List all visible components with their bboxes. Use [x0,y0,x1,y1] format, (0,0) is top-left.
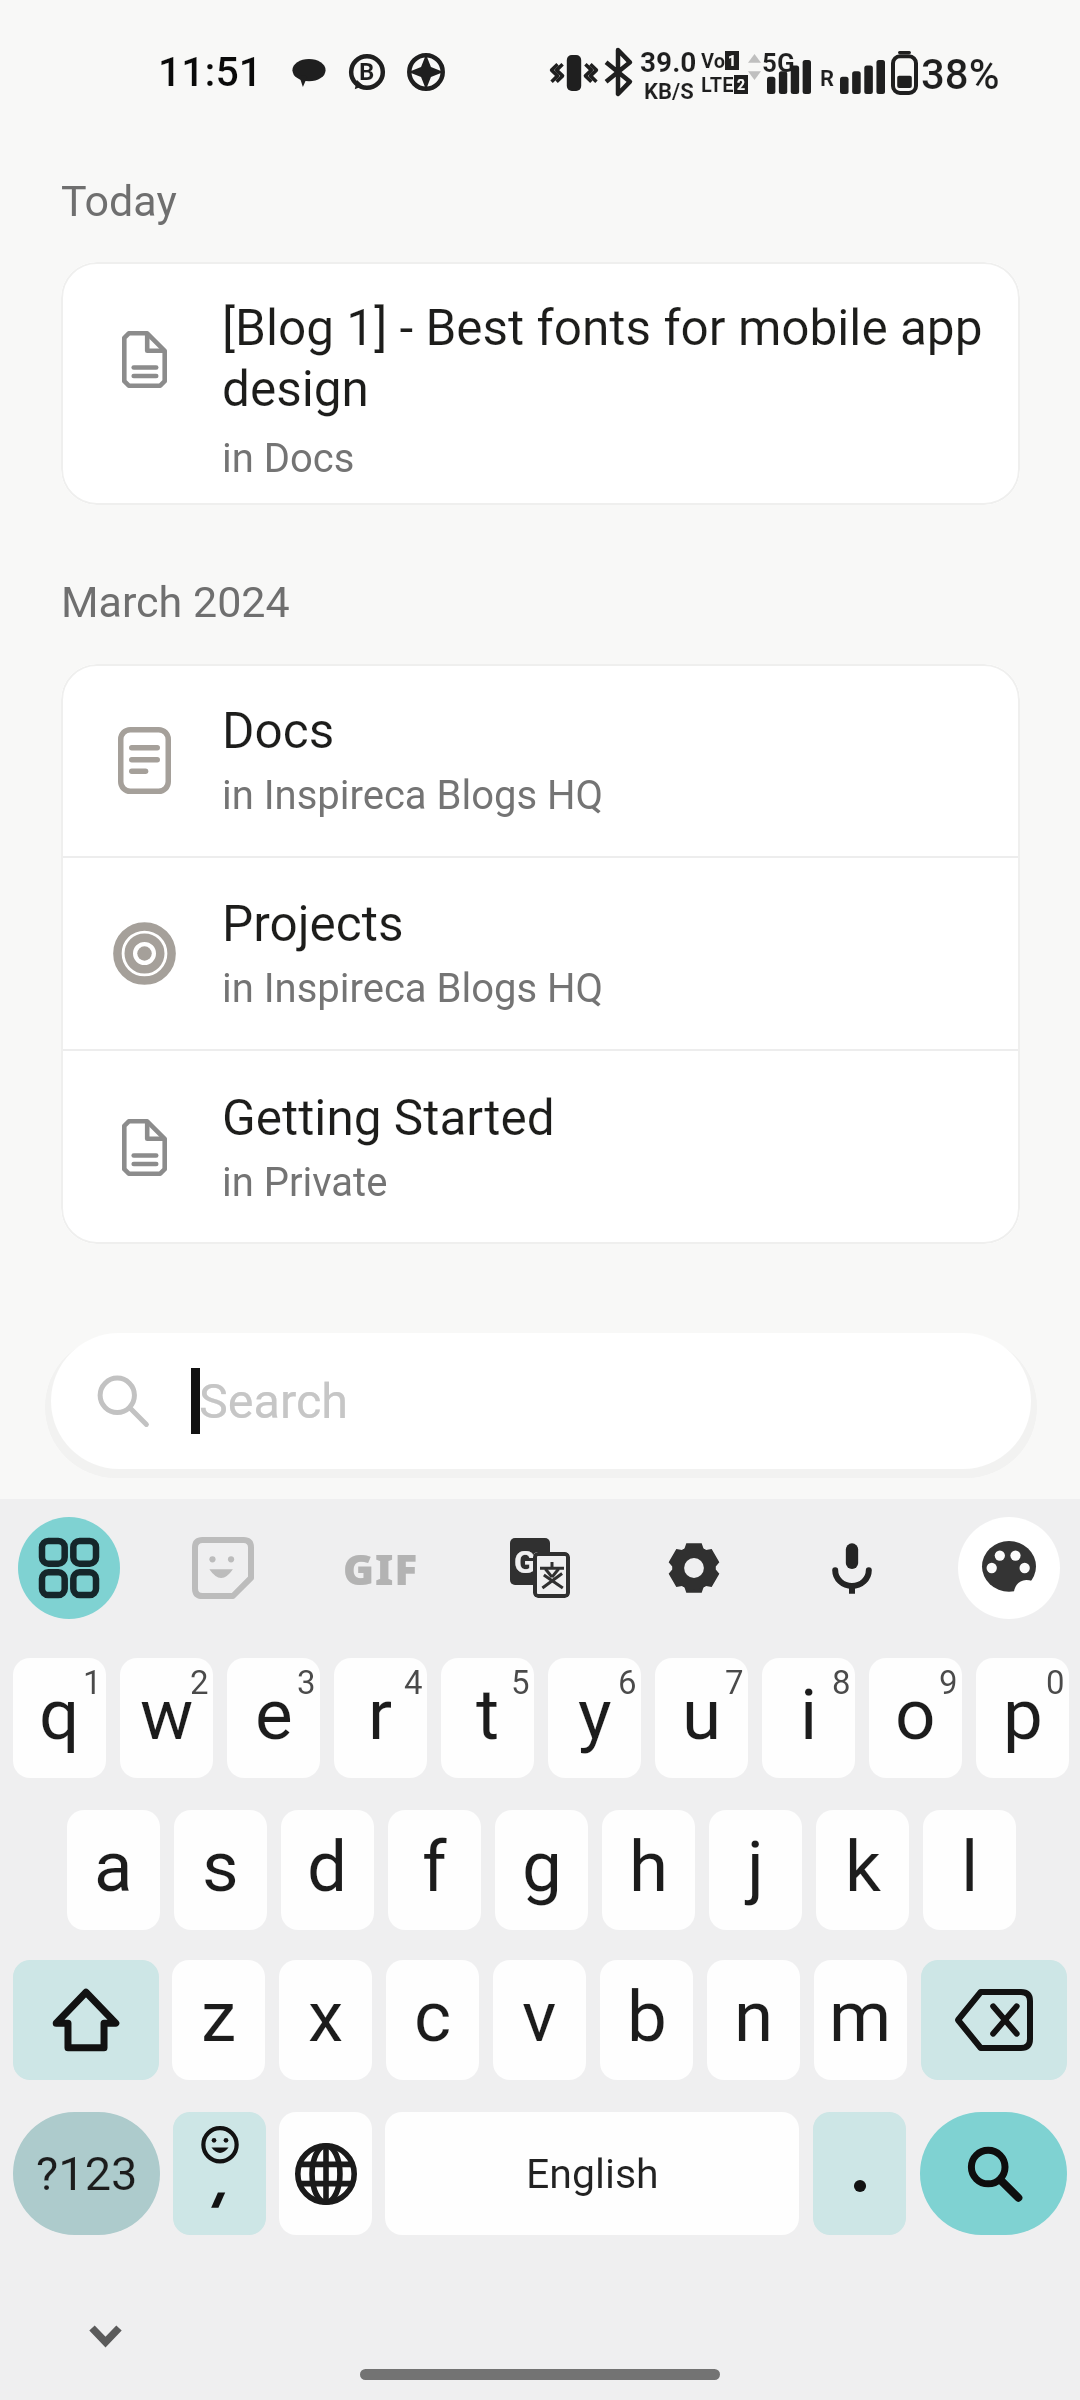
staticText: q [39,1673,80,1756]
button[interactable]: m [814,1960,907,2080]
staticText: March 2024 [61,577,290,627]
staticText: 2 [737,77,746,93]
staticText: Projects [222,895,404,953]
staticText: f [422,1825,447,1908]
button[interactable]: l [923,1810,1016,1930]
button[interactable]: i [762,1658,855,1778]
button[interactable]: c [386,1960,479,2080]
button[interactable]: Mic [801,1517,903,1619]
button[interactable]: Projects [61,857,1020,1050]
staticText: 9 [939,1663,958,1702]
button[interactable]: Palette [958,1517,1060,1619]
button[interactable]: Translate [489,1517,591,1619]
button[interactable]: r [334,1658,427,1778]
button[interactable]: Shift [13,1960,159,2080]
staticText: 8 [832,1663,851,1702]
button[interactable]: Search [51,1333,1031,1469]
staticText: 39.0 [640,46,697,79]
staticText: x [308,1975,344,2058]
button[interactable]: Apps [18,1517,120,1619]
button[interactable]: Backspace [921,1960,1067,2080]
staticText: i [800,1673,818,1756]
button[interactable]: n [707,1960,800,2080]
staticText: s [202,1825,239,1908]
staticText: e [255,1673,293,1756]
button[interactable]: a [67,1810,160,1930]
staticText: 4 [404,1663,423,1702]
button[interactable]: Settings [643,1517,745,1619]
button[interactable]: s [174,1810,267,1930]
staticText: b [627,1975,667,2058]
button[interactable]: d [281,1810,374,1930]
staticText: v [522,1975,557,2058]
staticText: GIF [343,1540,419,1597]
staticText: g [522,1825,562,1908]
staticText: l [961,1825,979,1908]
button[interactable]: ?123 [13,2112,160,2235]
button[interactable]: [Blog 1] - Best fonts for mobile app des… [61,262,1020,505]
staticText: 0 [1046,1663,1065,1702]
staticText: h [629,1825,669,1908]
button[interactable]: b [600,1960,693,2080]
staticText: j [747,1825,764,1908]
staticText: B [359,58,375,86]
button[interactable]: e [227,1658,320,1778]
staticText: in Inspireca Blogs HQ [222,965,604,1012]
button[interactable]: j [709,1810,802,1930]
staticText: Docs [222,702,335,760]
staticText: in Docs [222,435,355,482]
button[interactable] [813,2112,906,2235]
staticText: 38% [921,50,1000,99]
staticText: o [895,1673,936,1756]
button[interactable]: u [655,1658,748,1778]
staticText: LTE [701,73,734,96]
button[interactable]: t [441,1658,534,1778]
button[interactable]: Change language [279,2112,372,2235]
staticText: 5 [511,1663,530,1702]
staticText: G [514,1543,536,1581]
staticText: t [476,1673,500,1756]
staticText: Getting Started [222,1089,555,1147]
button[interactable]: v [493,1960,586,2080]
button[interactable]: Search [920,2112,1067,2235]
staticText: a [94,1825,133,1908]
button[interactable]: z [172,1960,265,2080]
button[interactable]: Docs [61,664,1020,857]
staticText: ?123 [36,2146,138,2201]
button[interactable]: o [869,1658,962,1778]
staticText: 11:51 [158,48,263,96]
staticText: n [734,1975,774,2058]
staticText: r [368,1673,393,1756]
staticText: k [845,1825,881,1908]
staticText: Search [199,1373,348,1430]
button[interactable]: x [279,1960,372,2080]
button[interactable]: Getting Started [61,1050,1020,1244]
staticText: 1 [83,1663,102,1702]
button[interactable]: q [13,1658,106,1778]
staticText: in Private [222,1159,388,1206]
staticText: 5G [762,48,795,78]
button[interactable]: k [816,1810,909,1930]
button[interactable]: Gif [330,1517,432,1619]
button[interactable]: p [976,1658,1069,1778]
button[interactable]: w [120,1658,213,1778]
staticText: 7 [725,1663,744,1702]
button[interactable]: Hide keyboard [77,2307,133,2363]
staticText: Vo [701,49,725,72]
staticText: [Blog 1] - Best fonts for mobile app des… [222,299,1012,418]
button[interactable]: Emoji [173,2112,266,2235]
staticText: y [578,1673,612,1756]
staticText: z [201,1975,237,2058]
staticText: 3 [297,1663,316,1702]
staticText: m [829,1975,892,2058]
button[interactable]: h [602,1810,695,1930]
button[interactable]: f [388,1810,481,1930]
button[interactable]: y [548,1658,641,1778]
button[interactable]: Sticker [172,1517,274,1619]
button[interactable]: English [385,2112,799,2235]
staticText: Today [61,176,177,226]
staticText: 2 [190,1663,209,1702]
button[interactable]: g [495,1810,588,1930]
staticText: 1 [728,53,737,69]
staticText: 6 [618,1663,637,1702]
